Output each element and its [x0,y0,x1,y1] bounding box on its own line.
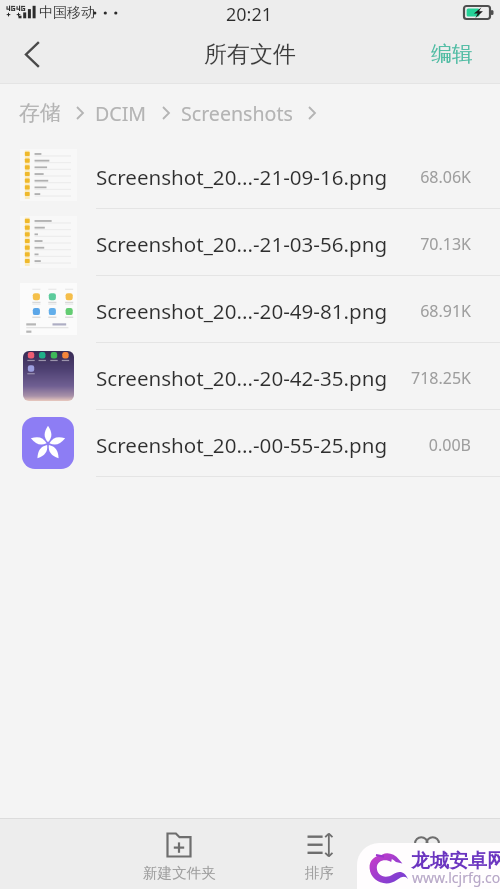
staticText: Screenshot_20...-21-03-56.png [96,230,420,258]
staticText: 编辑 [431,41,473,67]
button[interactable]: Screenshots [181,100,293,127]
staticText: Screenshot_20...-21-09-16.png [96,163,420,191]
button[interactable]: Screenshot_20...-00-55-25.png [0,410,500,477]
staticText: www.lcjrfg.com [412,868,500,887]
staticText: 所有文件 [204,40,296,69]
staticText: 0.00B [428,434,471,456]
button[interactable]: More [385,827,469,884]
staticText: 龙城安卓网 [411,849,500,873]
staticText: 70.13K [420,233,471,255]
staticText: Screenshot_20...-20-42-35.png [96,364,411,392]
staticText: 新建文件夹 [143,864,216,882]
button[interactable]: Screenshot_20...-20-42-35.png [0,343,500,410]
button[interactable]: Screenshot_20...-20-49-81.png [0,276,500,343]
button[interactable]: Screenshot_20...-21-03-56.png [0,209,500,276]
button[interactable]: DCIM [95,100,147,127]
staticText: 排序 [305,864,335,882]
button[interactable]: New folder [137,827,221,884]
staticText: 中国移动 [39,4,95,22]
staticText: 68.91K [420,300,471,322]
button[interactable]: 存储 [19,100,61,126]
staticText: Screenshot_20...-20-49-81.png [96,297,420,325]
button[interactable]: Sort [278,827,362,884]
button[interactable]: 编辑 [415,31,500,81]
staticText: 更多 [412,864,442,882]
staticText: 20:21 [226,2,273,27]
button[interactable]: Back [0,28,62,83]
staticText: 718.25K [411,367,471,389]
button[interactable]: Screenshot_20...-21-09-16.png [0,142,500,209]
staticText: 68.06K [420,166,471,188]
staticText: Screenshot_20...-00-55-25.png [96,431,428,459]
